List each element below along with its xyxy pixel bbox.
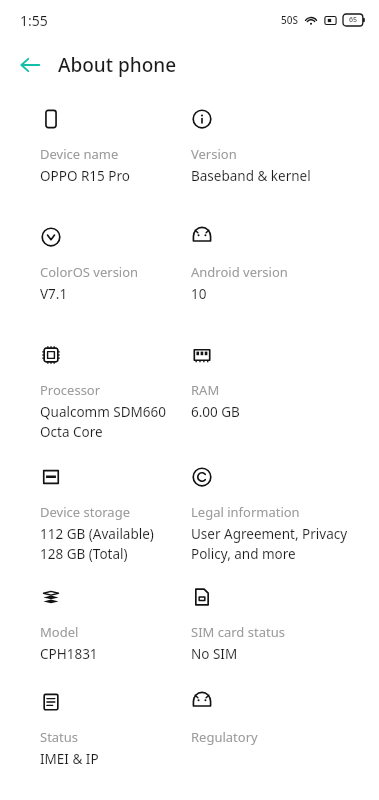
button[interactable]: Model xyxy=(40,586,189,663)
button[interactable]: SIM card status xyxy=(191,586,379,663)
staticText: 6.00 GB xyxy=(191,403,240,421)
staticText: User Agreement, Privacy Policy, and more xyxy=(191,525,371,563)
button[interactable]: Legal information xyxy=(191,466,379,563)
staticText: Regulatory xyxy=(191,728,258,746)
button[interactable]: Regulatory xyxy=(191,691,379,768)
staticText: SIM card status xyxy=(191,623,285,641)
staticText: IMEI & IP xyxy=(40,750,99,768)
staticText: Device name xyxy=(40,145,119,163)
staticText: Device storage xyxy=(40,503,130,521)
button[interactable]: RAM xyxy=(191,344,379,421)
staticText: Status xyxy=(40,728,79,746)
staticText: Baseband & kernel xyxy=(191,167,311,185)
button[interactable]: Back xyxy=(8,43,52,87)
staticText: OPPO R15 Pro xyxy=(40,167,130,185)
button[interactable]: Processor xyxy=(40,344,189,441)
staticText: ColorOS version xyxy=(40,263,139,281)
staticText: RAM xyxy=(191,381,220,399)
staticText: Qualcomm SDM660 Octa Core xyxy=(40,403,181,441)
staticText: Android version xyxy=(191,263,288,281)
staticText: V7.1 xyxy=(40,285,68,303)
staticText: About phone xyxy=(58,52,177,78)
staticText: 10 xyxy=(191,285,207,303)
staticText: 1:55 xyxy=(20,11,48,30)
staticText: Legal information xyxy=(191,503,300,521)
staticText: CPH1831 xyxy=(40,645,98,663)
button[interactable]: ColorOS version xyxy=(40,226,189,303)
staticText: 65 xyxy=(349,15,358,25)
button[interactable]: Status xyxy=(40,691,189,768)
button[interactable]: Device name xyxy=(40,108,189,185)
staticText: Model xyxy=(40,623,79,641)
button[interactable]: Device storage xyxy=(40,466,189,563)
staticText: Version xyxy=(191,145,237,163)
staticText: No SIM xyxy=(191,645,238,663)
button[interactable]: Android version xyxy=(191,226,379,303)
staticText: 50S xyxy=(281,13,298,27)
staticText: Processor xyxy=(40,381,101,399)
button[interactable]: Version xyxy=(191,108,379,185)
staticText: 112 GB (Available) 128 GB (Total) xyxy=(40,525,154,563)
